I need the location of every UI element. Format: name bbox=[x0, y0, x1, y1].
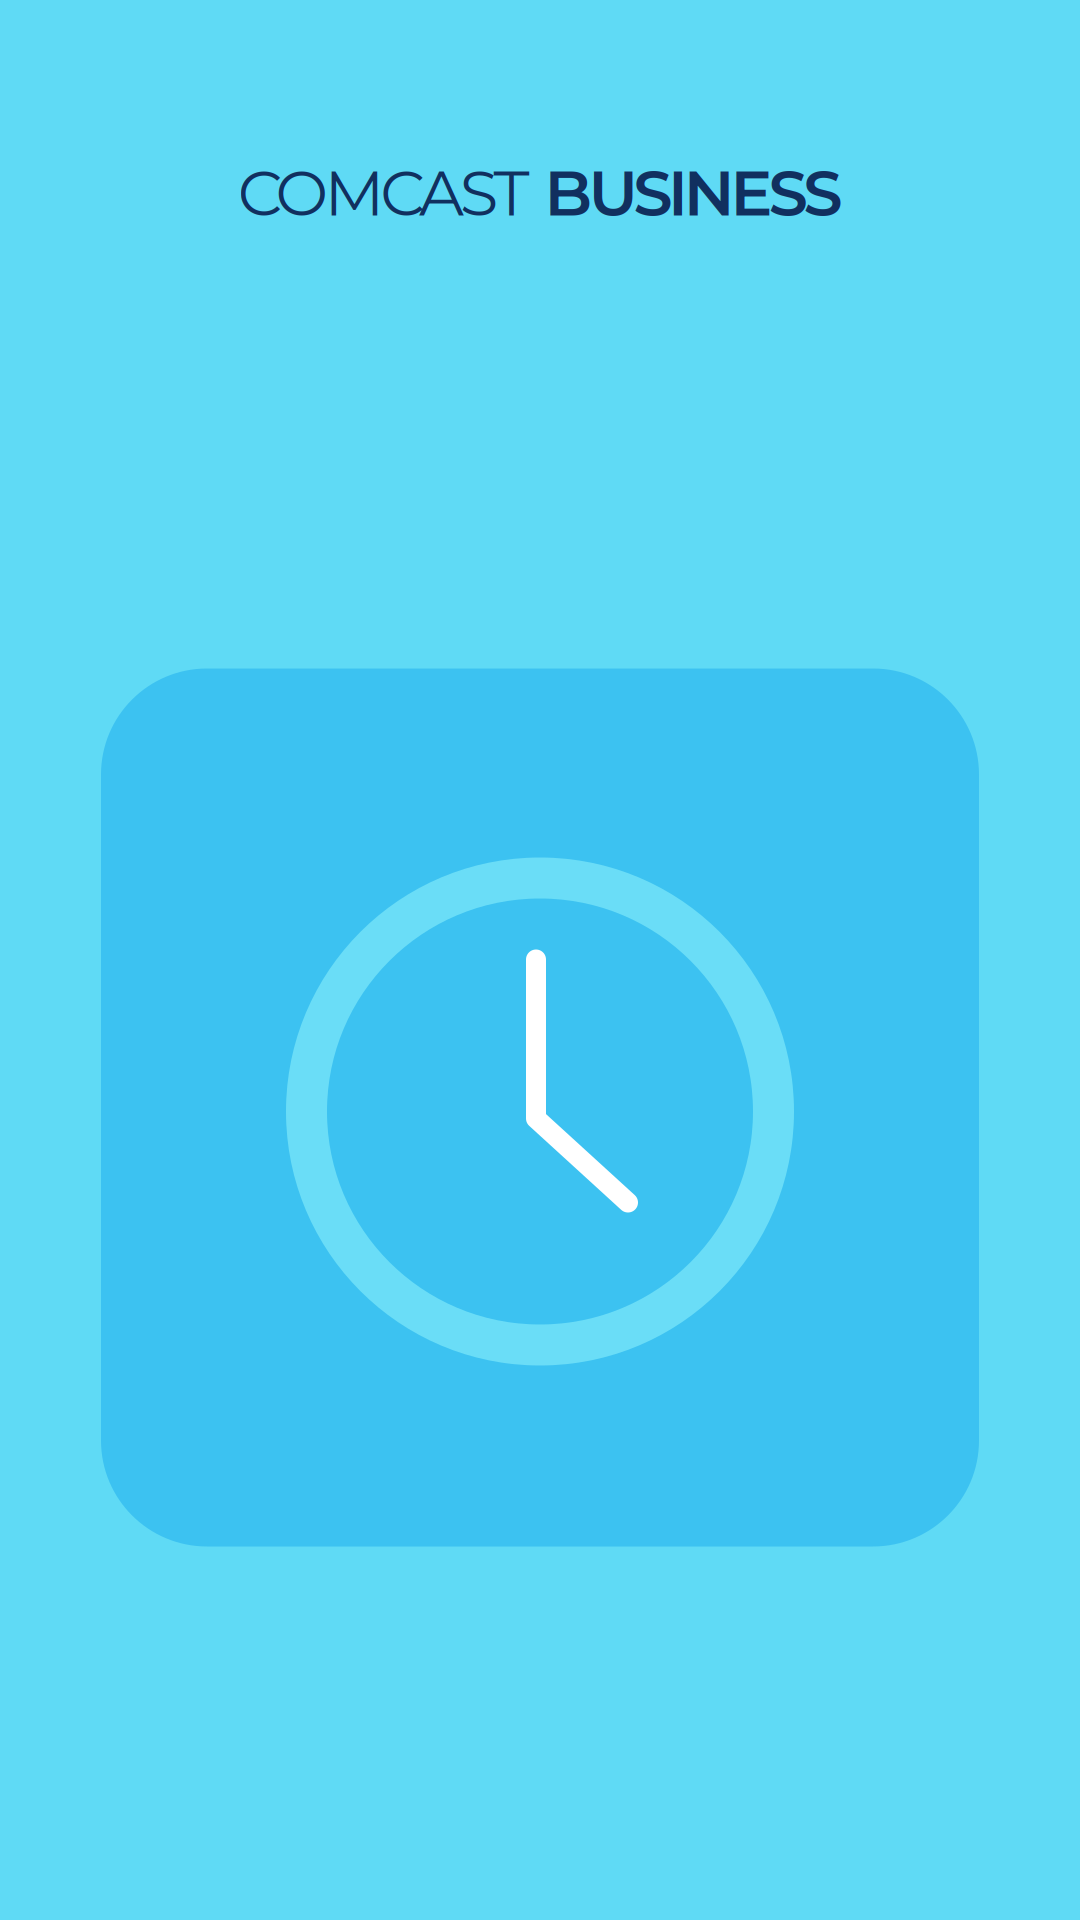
staticText: COMCAST bbox=[238, 155, 530, 231]
staticText: BUSINESS bbox=[545, 155, 842, 231]
